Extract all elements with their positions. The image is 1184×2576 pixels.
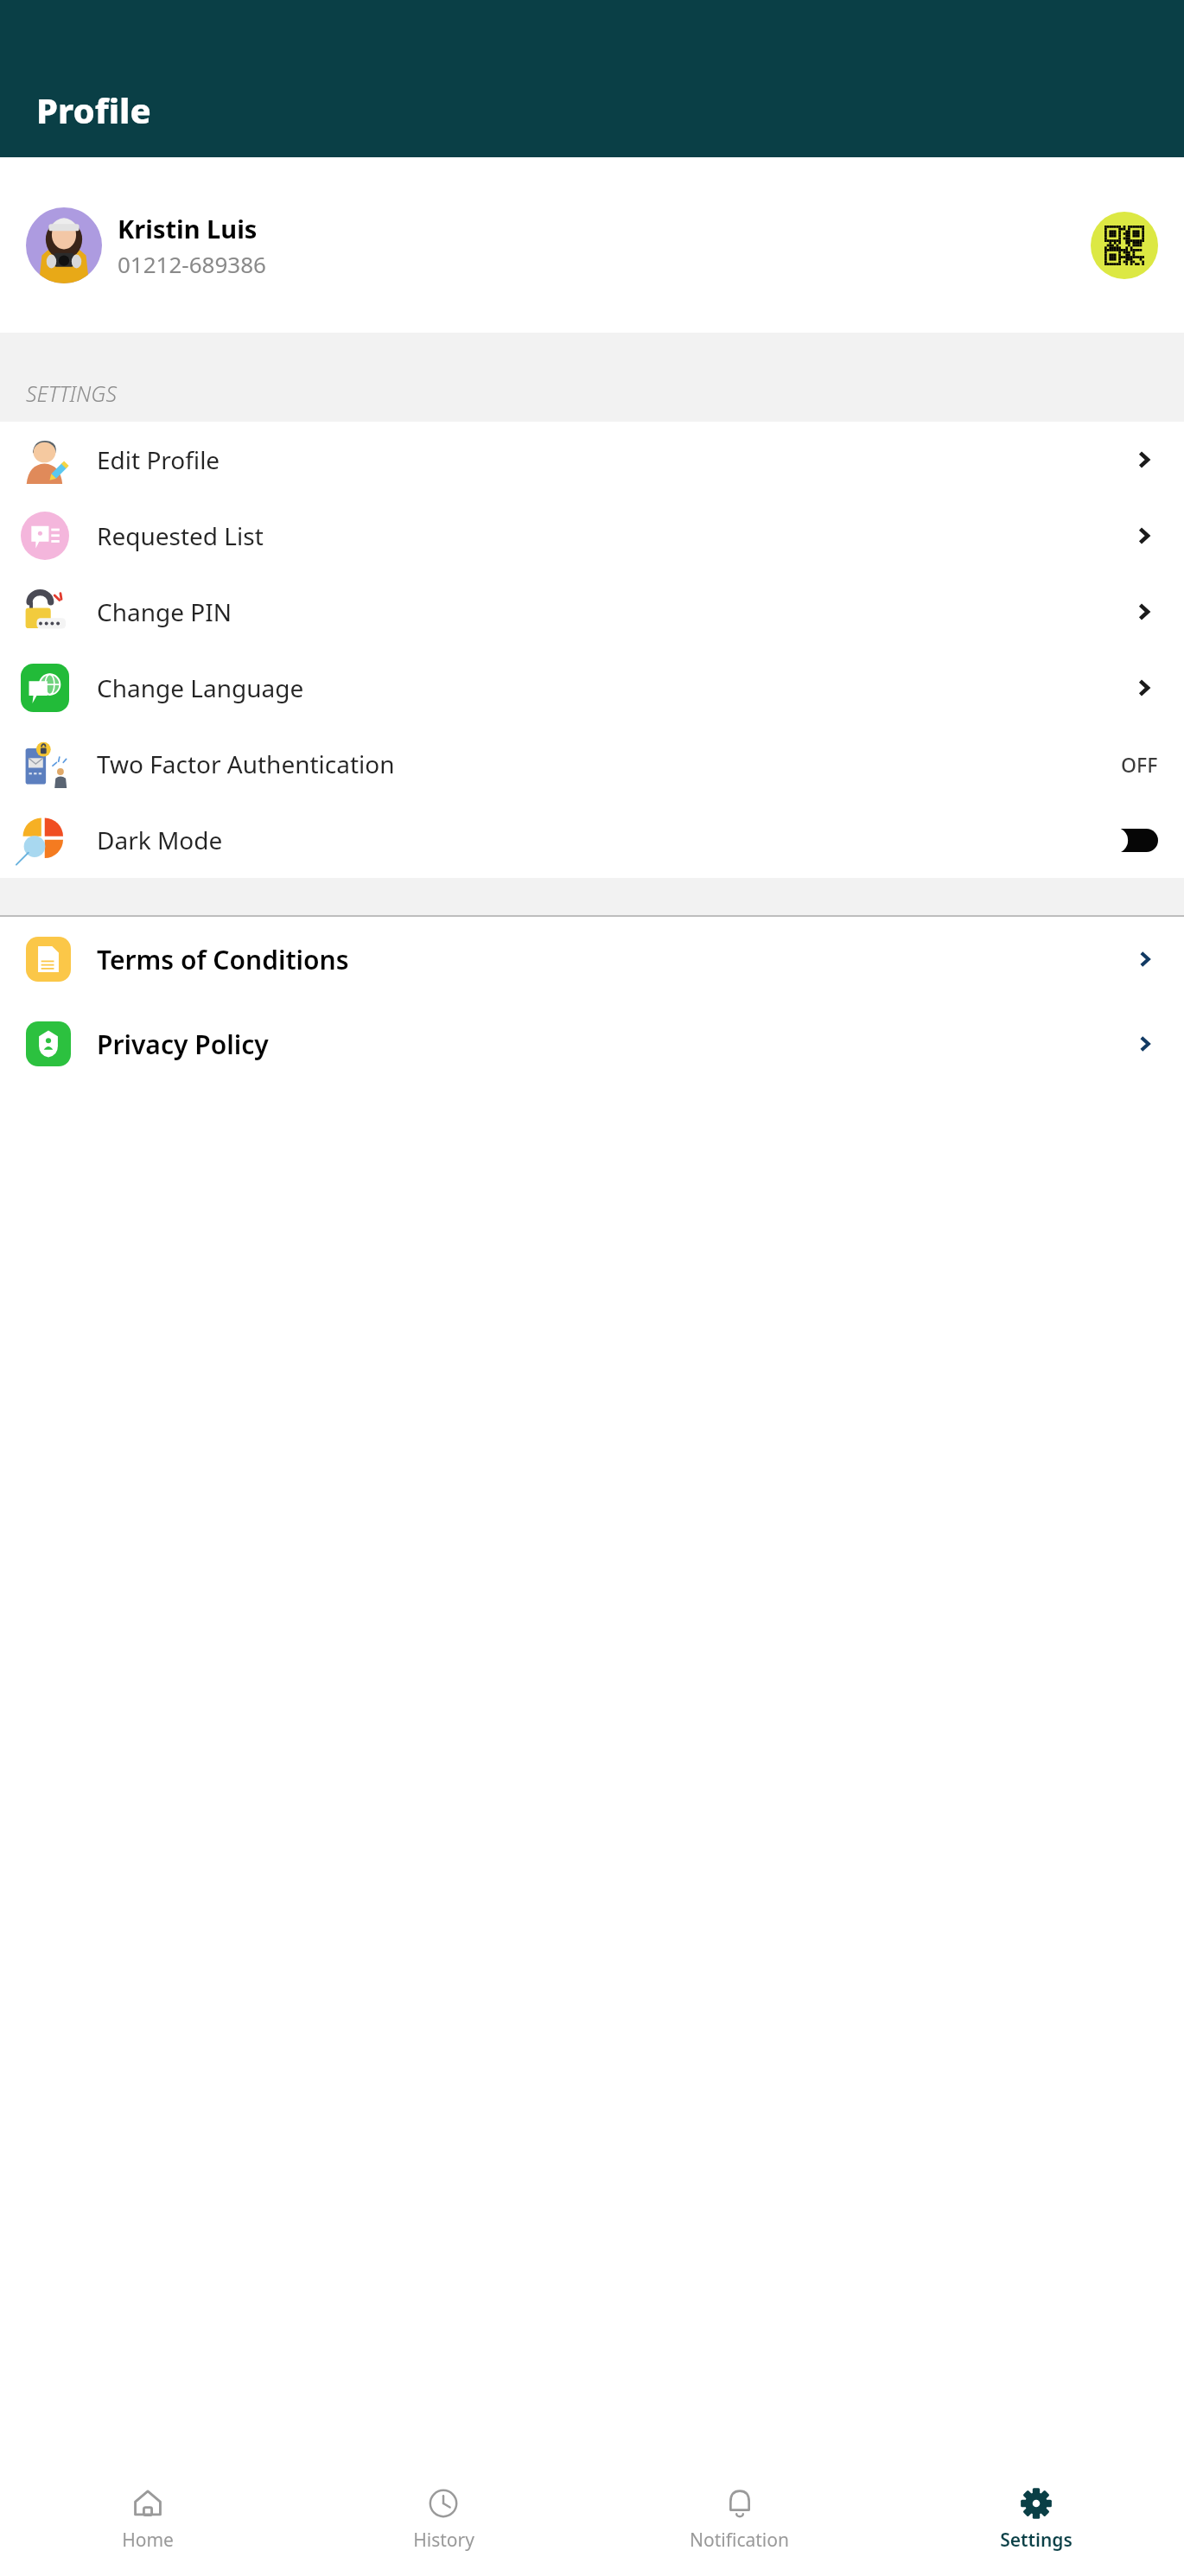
button[interactable]: Two Factor Authentication <box>0 726 1184 802</box>
button[interactable]: Dark Mode <box>0 802 1184 878</box>
button[interactable]: Home <box>0 2471 296 2576</box>
staticText: Profile <box>36 86 151 133</box>
staticText: Requested List <box>97 519 1132 552</box>
staticText: Privacy Policy <box>97 1027 1134 1062</box>
button[interactable]: Show QR code <box>1091 212 1158 279</box>
button[interactable]: Requested List <box>0 498 1184 574</box>
staticText: Dark Mode <box>97 824 1103 856</box>
staticText: Home <box>122 2528 174 2553</box>
button[interactable]: Settings <box>888 2471 1184 2576</box>
button[interactable]: History <box>296 2471 591 2576</box>
button[interactable]: Notification <box>591 2471 888 2576</box>
staticText: Notification <box>690 2528 789 2553</box>
staticText: Edit Profile <box>97 443 1132 476</box>
button[interactable]: Change PIN <box>0 574 1184 650</box>
staticText: Kristin Luis <box>118 212 258 245</box>
button[interactable]: Edit Profile <box>0 422 1184 498</box>
button[interactable]: Terms of Conditions <box>0 917 1184 1002</box>
staticText: SETTINGS <box>26 378 117 408</box>
staticText: Change PIN <box>97 595 1132 628</box>
staticText: Change Language <box>97 671 1132 704</box>
button[interactable]: Change Language <box>0 650 1184 726</box>
staticText: Two Factor Authentication <box>97 747 1121 780</box>
staticText: Terms of Conditions <box>97 942 1134 977</box>
button[interactable]: Dark mode toggle, off <box>1103 829 1158 852</box>
staticText: OFF <box>1121 751 1158 778</box>
staticText: 01212-689386 <box>118 249 266 279</box>
button[interactable]: Privacy Policy <box>0 1002 1184 1086</box>
staticText: Settings <box>1000 2528 1073 2553</box>
staticText: History <box>413 2528 474 2553</box>
